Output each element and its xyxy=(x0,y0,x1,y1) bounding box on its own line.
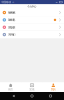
staticText: 发现 xyxy=(29,88,35,91)
button[interactable]: 意见反馈 xyxy=(0,24,64,31)
staticText: 我的 xyxy=(51,88,56,91)
button[interactable]: 我的 xyxy=(43,82,64,92)
button[interactable]: 我的收藏 xyxy=(0,9,64,16)
button[interactable]: 关于我们 xyxy=(0,31,64,38)
staticText: 意见反馈 xyxy=(8,26,16,29)
button[interactable]: Recents xyxy=(45,92,55,100)
staticText: 关于我们 xyxy=(8,33,16,36)
button[interactable]: 首页 xyxy=(0,82,21,92)
staticText: 18:02 xyxy=(55,1,58,3)
staticText: 我的消息 xyxy=(8,18,16,22)
button[interactable]: 我的消息 xyxy=(0,16,64,23)
staticText: 个人中心 xyxy=(27,5,37,8)
button[interactable]: Home xyxy=(27,92,37,100)
staticText: 我的收藏 xyxy=(8,11,16,14)
button[interactable]: Back xyxy=(8,92,18,100)
staticText: 4G xyxy=(12,1,14,3)
button[interactable]: 发现 xyxy=(21,82,43,92)
staticText: 首页 xyxy=(8,88,13,91)
staticText: 中国移动 xyxy=(1,0,11,4)
